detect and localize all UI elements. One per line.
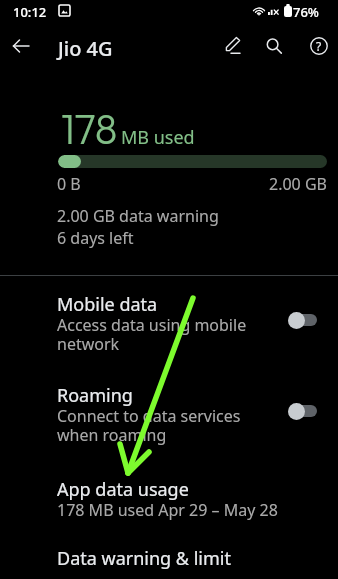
button[interactable]: Data warning & limit (0, 538, 338, 578)
button[interactable]: Back (3, 28, 39, 64)
button[interactable]: Edit (215, 28, 251, 64)
staticText: Roaming (57, 383, 133, 408)
staticText: 6 days left (57, 227, 134, 249)
button[interactable]: Roaming (0, 375, 338, 465)
staticText: MB used (121, 125, 195, 150)
button[interactable]: Toggle (288, 401, 322, 421)
button[interactable]: Help (301, 28, 337, 64)
staticText: 10:12 (13, 3, 47, 21)
staticText: 0 B (57, 173, 81, 195)
staticText: Mobile data (57, 292, 158, 317)
staticText: Jio 4G (58, 35, 113, 62)
button[interactable]: App data usage (0, 469, 338, 525)
staticText: Connect to data services when roaming (57, 405, 241, 446)
staticText: 178 (61, 103, 118, 155)
staticText: 178 MB used Apr 29 – May 28 (57, 499, 278, 521)
staticText: Access data using mobile network (57, 314, 247, 355)
button[interactable]: Search (256, 28, 292, 64)
button[interactable]: Toggle (288, 310, 322, 330)
staticText: ? (316, 38, 322, 54)
button[interactable]: Mobile data (0, 284, 338, 374)
staticText: Data warning & limit (57, 546, 231, 571)
staticText: 2.00 GB data warning (57, 205, 219, 227)
staticText: 76% (293, 3, 319, 21)
staticText: 2.00 GB (269, 173, 327, 195)
staticText: App data usage (57, 477, 189, 502)
